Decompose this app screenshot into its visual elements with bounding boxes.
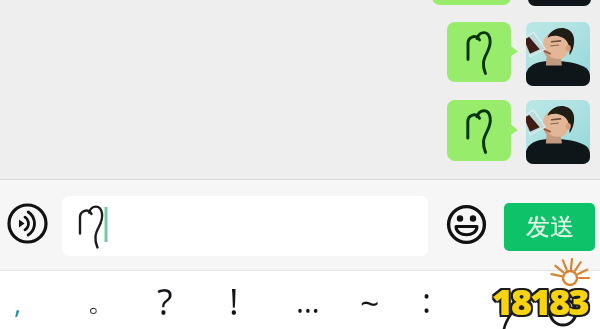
button[interactable]: ?	[138, 277, 192, 325]
staticText: 18183	[490, 275, 586, 324]
staticText: …	[296, 281, 320, 322]
staticText: !	[229, 277, 239, 325]
button[interactable]: …	[281, 277, 335, 325]
staticText: 18183	[490, 279, 586, 328]
staticText: ,	[14, 283, 22, 321]
button[interactable]	[62, 196, 428, 256]
staticText: 18183	[494, 279, 590, 328]
button[interactable]: Contact avatar	[526, 100, 590, 164]
staticText: ~	[360, 280, 380, 326]
button[interactable]: !	[207, 277, 261, 325]
button[interactable]: ~	[343, 279, 397, 327]
staticText: 18183	[492, 277, 588, 326]
button[interactable]: Contact avatar	[528, 0, 591, 6]
button[interactable]: :	[400, 276, 454, 324]
staticText: 18183	[492, 279, 588, 328]
staticText: 。	[87, 282, 117, 320]
staticText: 发送	[526, 212, 574, 242]
staticText: 18183	[490, 277, 586, 326]
button[interactable]: ,	[0, 278, 45, 326]
button[interactable]	[432, 0, 519, 5]
staticText: 18183	[494, 277, 590, 326]
staticText: 18183	[492, 275, 588, 324]
staticText: ?	[157, 277, 173, 325]
button[interactable]	[447, 22, 519, 82]
button[interactable]: Emoji	[446, 204, 487, 245]
button[interactable]: Contact avatar	[526, 22, 590, 86]
button[interactable]: Voice input	[7, 203, 48, 244]
staticText: 18183	[494, 275, 590, 324]
staticText: :	[422, 277, 432, 323]
button[interactable]: 。	[75, 277, 129, 325]
button[interactable]	[447, 100, 519, 161]
button[interactable]: 发送	[504, 203, 595, 251]
